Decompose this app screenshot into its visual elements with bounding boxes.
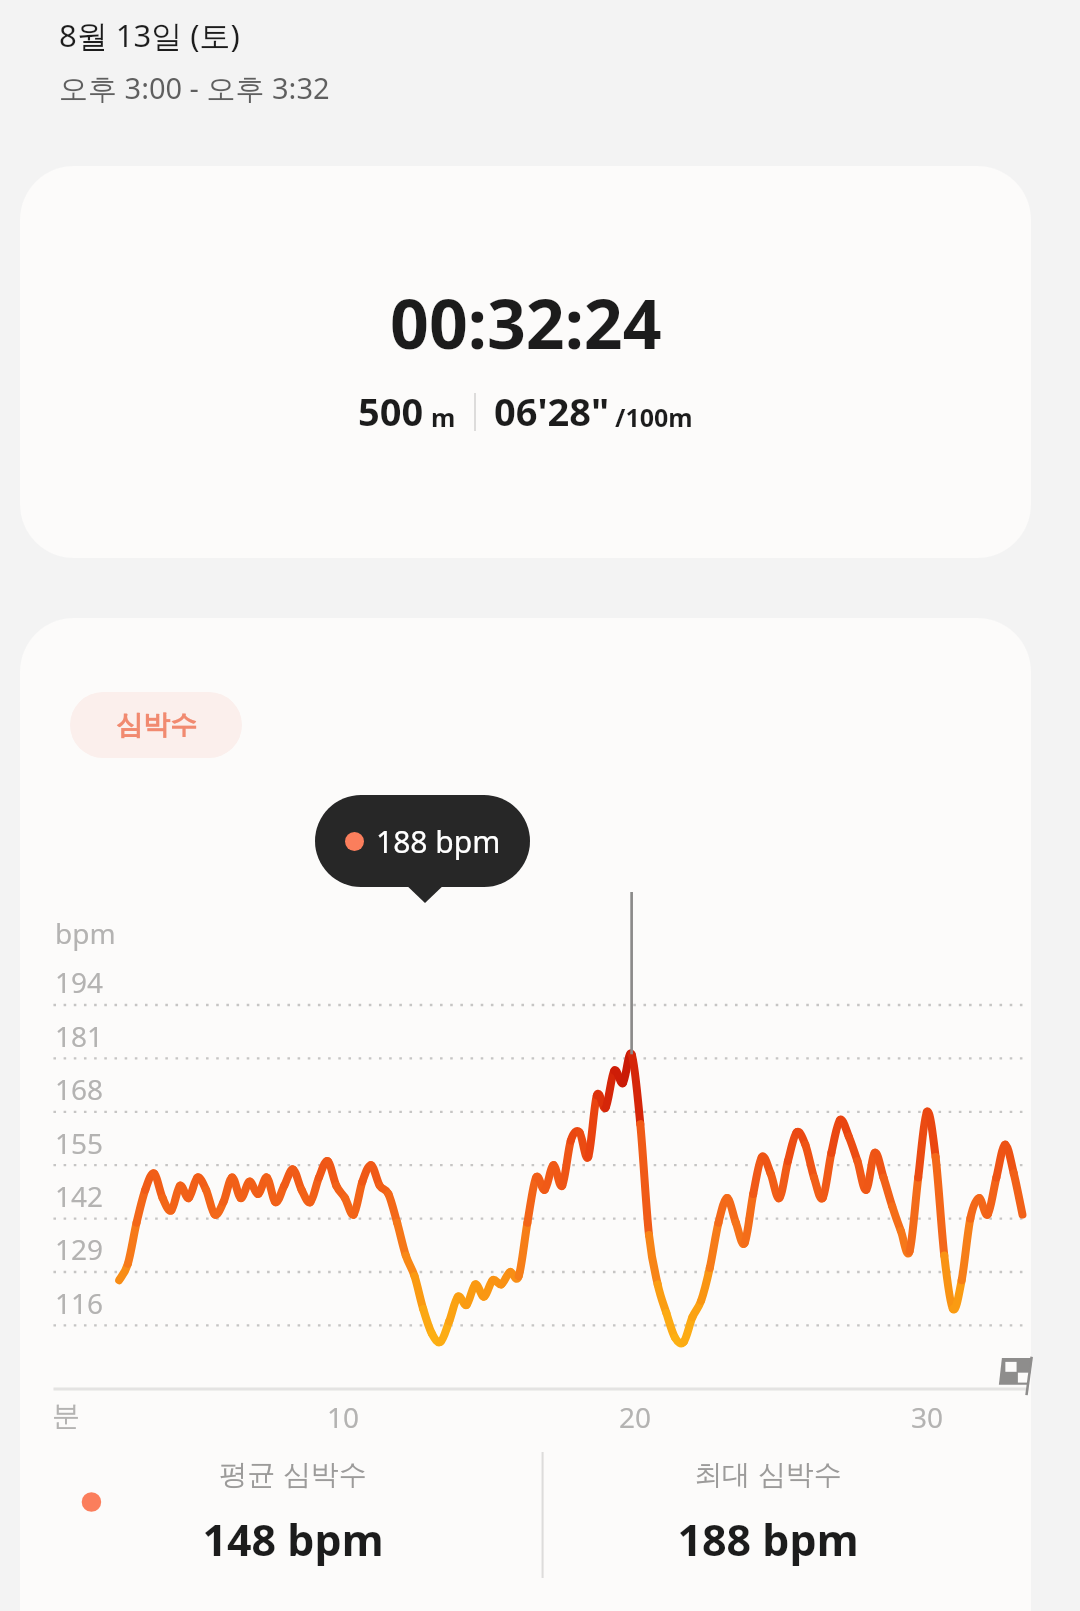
staticText: 168 <box>55 1070 104 1108</box>
staticText: 20 <box>619 1398 652 1436</box>
staticText: 129 <box>55 1230 104 1268</box>
button[interactable]: 최대 심박수 <box>528 1440 1008 1611</box>
staticText: m <box>431 400 456 434</box>
button[interactable]: 심박수 <box>70 692 242 758</box>
staticText: 188 bpm <box>677 1510 859 1569</box>
button[interactable]: 평균 심박수 <box>58 1440 528 1611</box>
button[interactable]: 188 bpm <box>315 795 530 887</box>
button[interactable]: 00:32:24 <box>20 166 1031 558</box>
staticText: 분 <box>52 1398 80 1433</box>
staticText: 00:32:24 <box>390 276 662 369</box>
staticText: bpm <box>55 914 116 952</box>
staticText: 116 <box>55 1284 104 1322</box>
staticText: 8월 13일 (토) <box>59 14 240 56</box>
staticText: 194 <box>55 963 104 1001</box>
staticText: 148 bpm <box>202 1510 384 1569</box>
staticText: 181 <box>55 1017 104 1055</box>
staticText: 오후 3:00 - 오후 3:32 <box>59 68 330 108</box>
staticText: 155 <box>55 1124 104 1162</box>
staticText: 심박수 <box>116 708 197 742</box>
staticText: 30 <box>911 1398 944 1436</box>
staticText: 평균 심박수 <box>219 1454 367 1492</box>
staticText: 142 <box>55 1177 104 1215</box>
staticText: 188 bpm <box>376 821 501 862</box>
staticText: 500 <box>358 385 424 437</box>
staticText: 06'28" <box>494 385 610 437</box>
staticText: 최대 심박수 <box>694 1454 842 1492</box>
staticText: 10 <box>327 1398 360 1436</box>
staticText: /100m <box>615 400 693 434</box>
